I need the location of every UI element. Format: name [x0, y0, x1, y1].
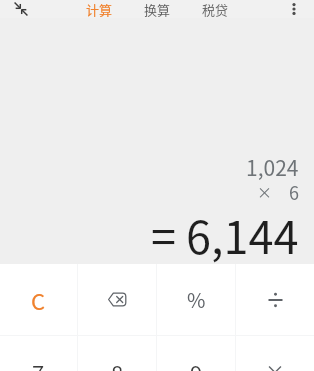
staticText: 税贷	[202, 0, 229, 18]
button[interactable]: 税贷	[202, 0, 229, 18]
staticText: 7	[32, 356, 45, 371]
button[interactable]: 8	[78, 336, 156, 371]
staticText: %	[187, 285, 206, 314]
staticText: ×	[257, 181, 273, 203]
button[interactable]: Collapse	[7, 0, 35, 18]
button[interactable]: Multiply	[236, 336, 314, 371]
button[interactable]: Backspace	[78, 264, 156, 335]
staticText: 换算	[144, 0, 171, 18]
staticText: 1,024	[246, 152, 299, 182]
staticText: 6	[289, 179, 299, 205]
staticText: 计算	[86, 0, 113, 18]
staticText: = 6,144	[151, 202, 299, 267]
staticText: 8	[111, 356, 124, 371]
staticText: 9	[190, 356, 203, 371]
button[interactable]: 计算	[86, 0, 113, 18]
button[interactable]: 换算	[144, 0, 171, 18]
button[interactable]: 7	[0, 336, 77, 371]
button[interactable]: More options	[286, 0, 302, 18]
button[interactable]: 9	[157, 336, 235, 371]
button[interactable]: Clear	[0, 264, 77, 335]
button[interactable]: Percent	[157, 264, 235, 335]
button[interactable]: Divide	[236, 264, 314, 335]
staticText: C	[31, 284, 46, 316]
staticText: ×	[265, 357, 285, 371]
